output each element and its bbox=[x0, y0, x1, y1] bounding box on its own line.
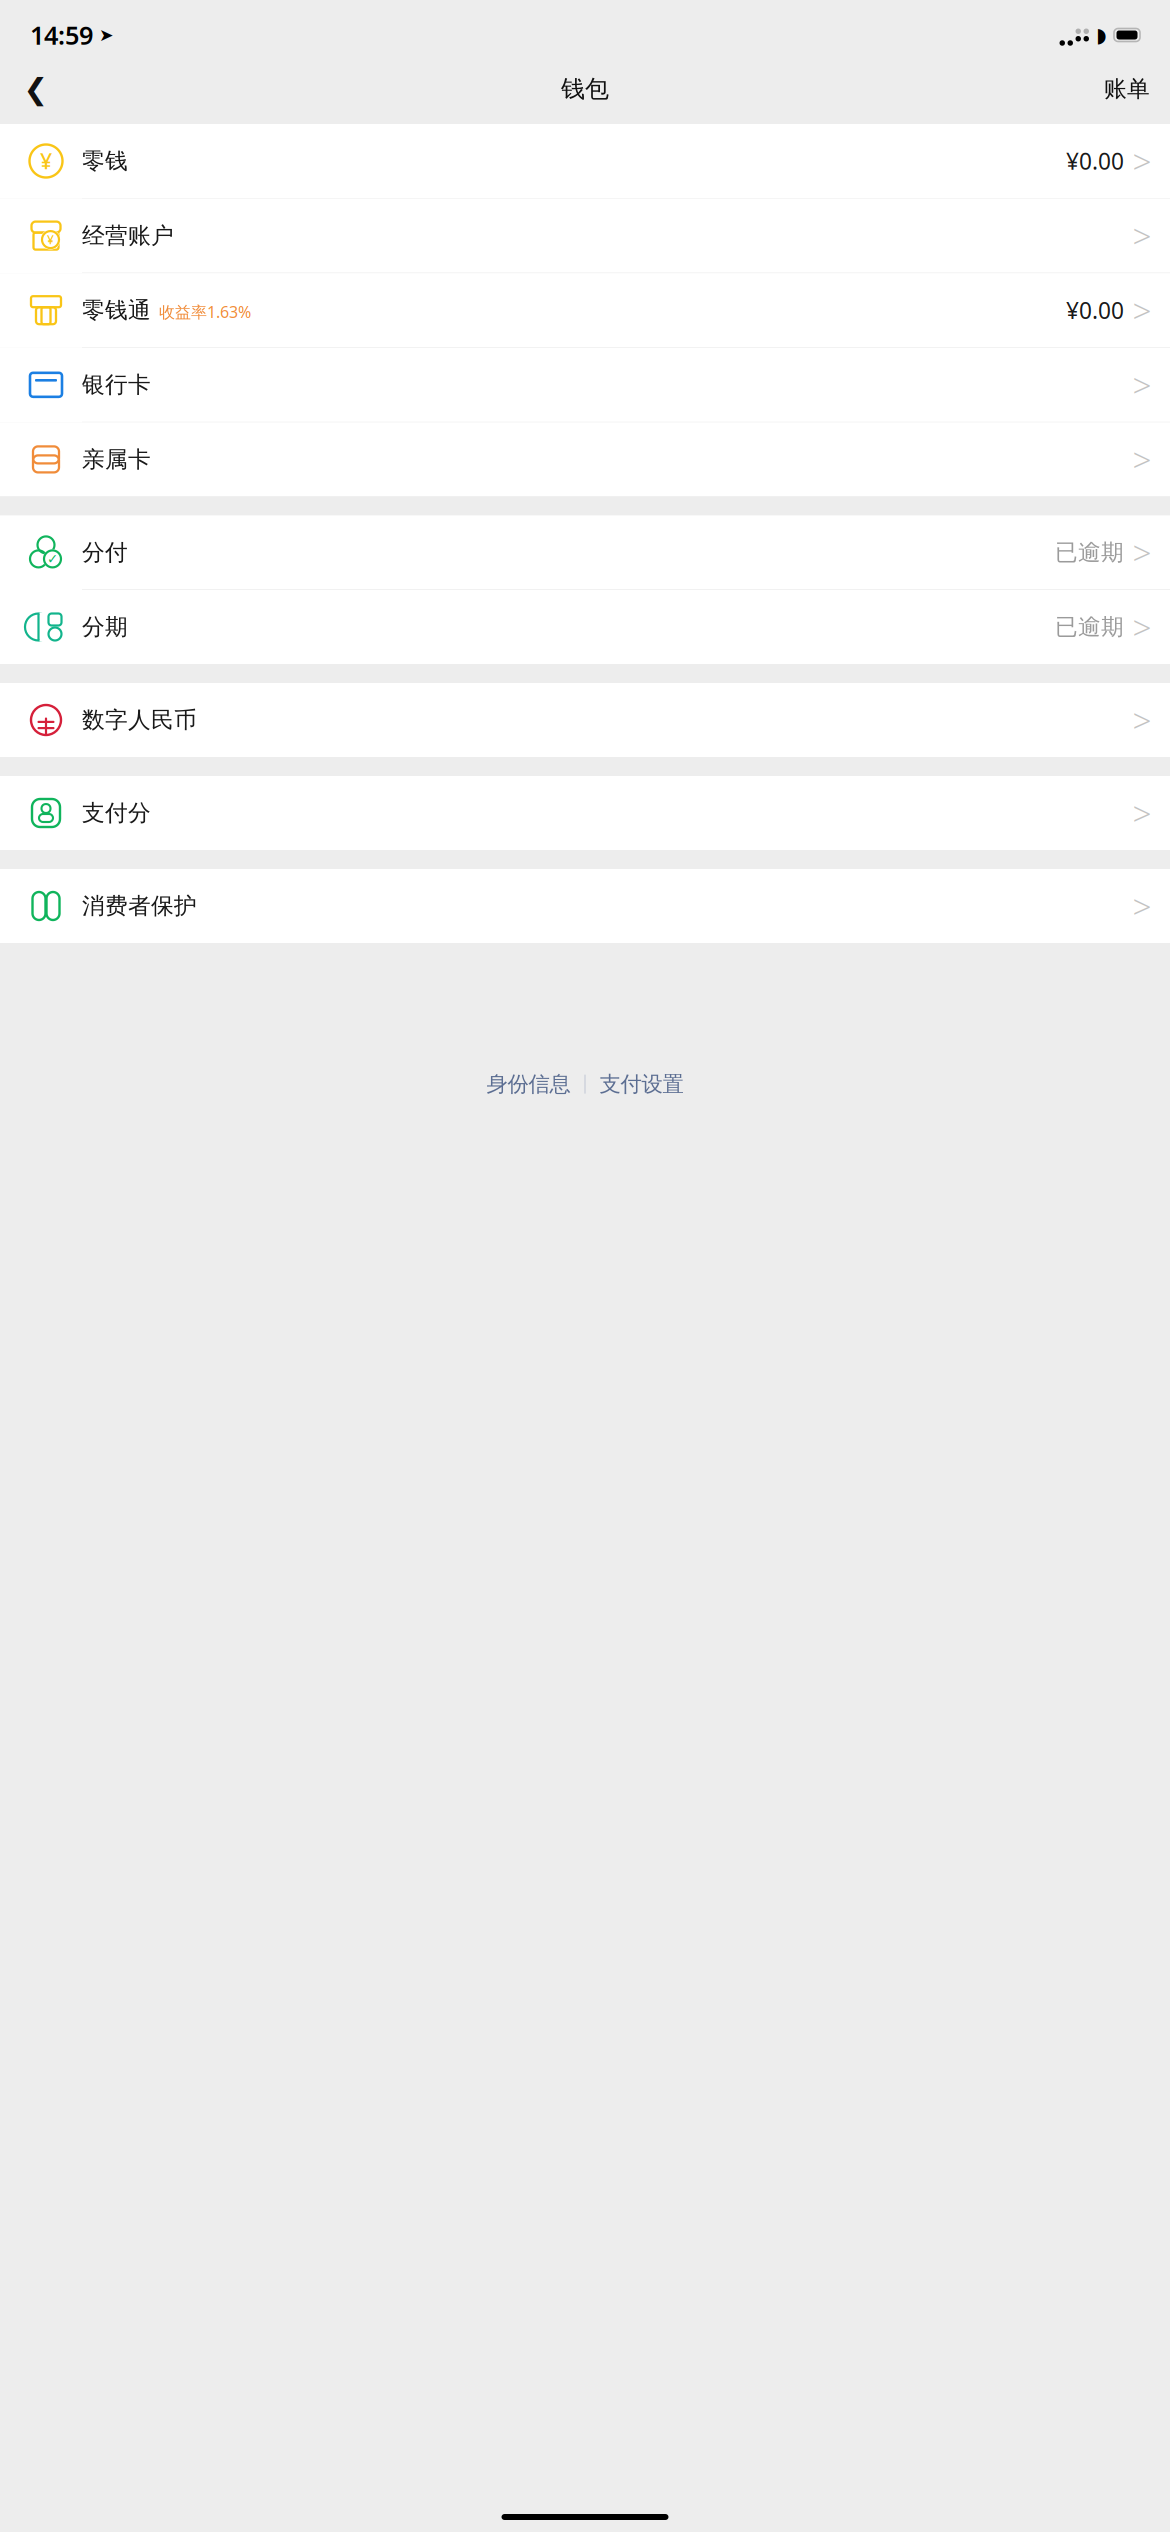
staticText: > bbox=[1132, 530, 1151, 575]
staticText: 分付 bbox=[82, 538, 128, 566]
staticText: ➤ bbox=[99, 25, 114, 45]
staticText: > bbox=[1132, 698, 1151, 742]
staticText: > bbox=[1132, 605, 1151, 649]
staticText: 已逾期 bbox=[1055, 538, 1124, 566]
staticText: > bbox=[1132, 213, 1151, 258]
staticText: ✓ bbox=[47, 551, 58, 566]
staticText: 经营账户 bbox=[82, 222, 174, 249]
staticText: > bbox=[1132, 437, 1151, 482]
button[interactable]: 消费者保护 bbox=[0, 869, 1170, 943]
staticText: 已逾期 bbox=[1055, 613, 1124, 641]
staticText: 支付设置 bbox=[599, 1071, 683, 1097]
staticText: ¥ bbox=[40, 147, 52, 175]
staticText: 零钱 bbox=[82, 147, 128, 175]
staticText: ¥0.00 bbox=[1066, 295, 1124, 325]
staticText: 零钱通 bbox=[82, 296, 151, 324]
staticText: > bbox=[1132, 791, 1151, 835]
button[interactable]: 支付分 bbox=[0, 776, 1170, 850]
staticText: 消费者保护 bbox=[82, 892, 197, 920]
staticText: 身份信息 bbox=[486, 1071, 570, 1097]
staticText: > bbox=[1132, 288, 1151, 332]
button[interactable]: 零钱通 bbox=[0, 273, 1170, 348]
button[interactable]: 身份信息 bbox=[472, 1063, 584, 1105]
staticText: > bbox=[1132, 363, 1151, 407]
staticText: 账单 bbox=[1104, 75, 1150, 103]
staticText: ¥0.00 bbox=[1066, 146, 1124, 176]
staticText: 钱包 bbox=[561, 74, 609, 104]
staticText: 分期 bbox=[82, 613, 128, 641]
staticText: 数字人民币 bbox=[82, 706, 197, 734]
button[interactable]: ¥ bbox=[0, 199, 1170, 273]
staticText: ❮ bbox=[23, 72, 48, 106]
staticText: 银行卡 bbox=[82, 371, 151, 399]
button[interactable]: 银行卡 bbox=[0, 348, 1170, 422]
staticText: 收益率1.63% bbox=[159, 301, 251, 322]
button[interactable]: 亲属卡 bbox=[0, 422, 1170, 496]
staticText: 14:59 bbox=[30, 18, 93, 52]
staticText: ¥ bbox=[47, 232, 54, 247]
button[interactable]: 分期 bbox=[0, 590, 1170, 664]
button[interactable]: 支付设置 bbox=[585, 1063, 697, 1105]
staticText: 支付分 bbox=[82, 799, 151, 827]
button[interactable]: ✓ bbox=[0, 515, 1170, 590]
button[interactable]: 返回 bbox=[14, 67, 58, 111]
button[interactable]: 账单 bbox=[1098, 67, 1156, 111]
staticText: > bbox=[1132, 884, 1151, 928]
staticText: ◗ bbox=[1096, 24, 1107, 46]
button[interactable]: ¥ bbox=[0, 124, 1170, 199]
button[interactable]: 数字人民币 bbox=[0, 683, 1170, 757]
staticText: 亲属卡 bbox=[82, 445, 151, 473]
staticText: > bbox=[1132, 139, 1151, 183]
